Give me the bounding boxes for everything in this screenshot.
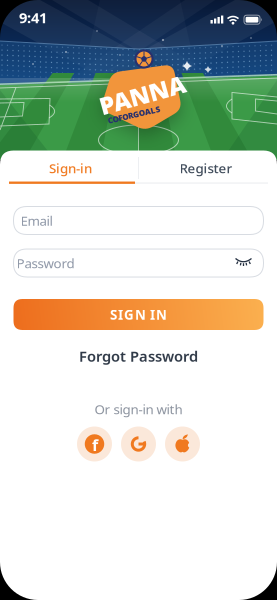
- button[interactable]: Sign in with Facebook: [77, 426, 112, 461]
- staticText: Sign-in: [49, 159, 92, 177]
- staticText: Register: [179, 159, 232, 177]
- staticText: Forgot Password: [79, 346, 198, 366]
- staticText: Or sign-in with: [94, 400, 182, 418]
- button[interactable]: S I G N I N: [13, 299, 263, 330]
- staticText: 9:41: [19, 8, 47, 27]
- staticText: Password: [16, 254, 74, 272]
- button[interactable]: Sign in with Google: [121, 426, 156, 461]
- staticText: COFORGOALS: [107, 109, 161, 120]
- button[interactable]: Sign-in: [8, 154, 133, 182]
- staticText: PANNA: [98, 79, 186, 111]
- button[interactable]: Sign in with Apple: [165, 426, 200, 461]
- staticText: S I G N I N: [110, 306, 167, 323]
- button[interactable]: Show password: [234, 257, 252, 268]
- staticText: f: [92, 434, 98, 456]
- staticText: Email: [20, 212, 52, 229]
- button[interactable]: Forgot Password: [79, 346, 198, 366]
- button[interactable]: Register: [143, 154, 268, 182]
